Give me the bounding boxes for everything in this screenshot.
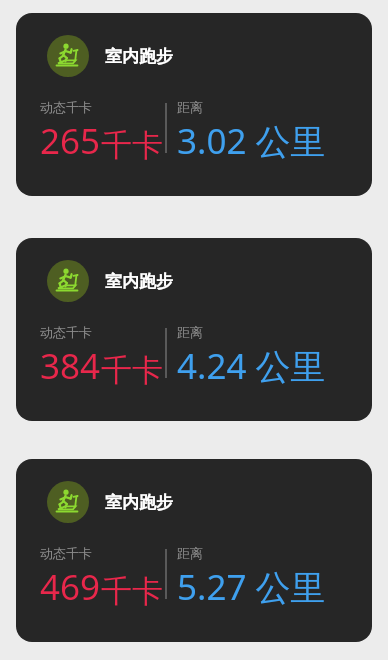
staticText: 千卡 bbox=[101, 351, 163, 390]
staticText: 室内跑步 bbox=[105, 492, 173, 513]
staticText: 室内跑步 bbox=[105, 271, 173, 292]
other: Indoor running bbox=[47, 481, 89, 523]
staticText: 动态千卡 bbox=[40, 99, 92, 115]
button[interactable]: Indoor running bbox=[16, 459, 372, 642]
staticText: 469 bbox=[40, 563, 101, 611]
other: Indoor running bbox=[47, 35, 89, 77]
other: Indoor running bbox=[47, 260, 89, 302]
staticText: 动态千卡 bbox=[40, 545, 92, 561]
staticText: 4.24 公里 bbox=[177, 342, 326, 390]
staticText: 千卡 bbox=[101, 126, 163, 165]
staticText: 5.27 公里 bbox=[177, 563, 326, 611]
button[interactable]: Indoor running bbox=[16, 238, 372, 421]
staticText: 室内跑步 bbox=[105, 46, 173, 67]
staticText: 384 bbox=[40, 342, 101, 390]
staticText: 距离 bbox=[177, 324, 203, 340]
staticText: 3.02 公里 bbox=[177, 117, 326, 165]
staticText: 动态千卡 bbox=[40, 324, 92, 340]
staticText: 265 bbox=[40, 117, 101, 165]
staticText: 千卡 bbox=[101, 572, 163, 611]
staticText: 距离 bbox=[177, 99, 203, 115]
staticText: 距离 bbox=[177, 545, 203, 561]
button[interactable]: Indoor running bbox=[16, 13, 372, 196]
